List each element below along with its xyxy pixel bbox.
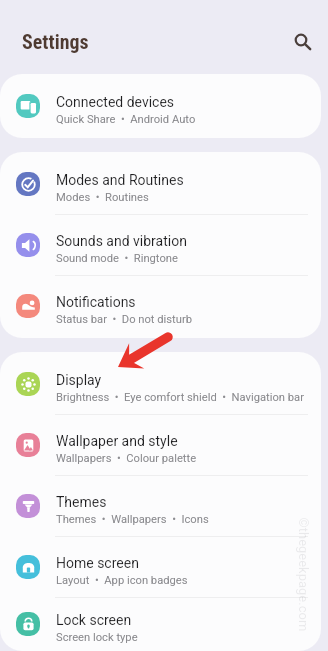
staticText: Status bar • Do not disturb: [56, 313, 192, 326]
staticText: Connected devices: [56, 94, 175, 110]
staticText: ©thegeekpage.com: [295, 517, 310, 631]
staticText: Layout • App icon badges: [56, 574, 188, 587]
button[interactable]: Notifications: [0, 276, 321, 336]
staticText: Settings: [22, 30, 89, 53]
button[interactable]: Wallpaper and style: [0, 415, 321, 475]
staticText: Quick Share • Android Auto: [56, 113, 196, 126]
staticText: Sounds and vibration: [56, 233, 187, 249]
staticText: Lock screen: [56, 612, 132, 628]
button[interactable]: Modes and Routines: [0, 154, 321, 214]
staticText: Notifications: [56, 294, 136, 310]
staticText: Brightness • Eye comfort shield • Naviga…: [56, 391, 304, 404]
button[interactable]: Search: [288, 27, 314, 53]
staticText: Modes and Routines: [56, 172, 184, 188]
staticText: Modes • Routines: [56, 191, 149, 204]
staticText: Themes: [56, 494, 107, 510]
button[interactable]: Connected devices: [0, 76, 321, 136]
staticText: Screen lock type: [56, 631, 138, 644]
button[interactable]: Lock screen: [0, 598, 321, 649]
staticText: Sound mode • Ringtone: [56, 252, 178, 265]
staticText: Wallpapers • Colour palette: [56, 452, 197, 465]
button[interactable]: Home screen: [0, 537, 321, 597]
staticText: Themes • Wallpapers • Icons: [56, 513, 209, 526]
button[interactable]: Display: [0, 354, 321, 414]
button[interactable]: Themes: [0, 476, 321, 536]
staticText: Home screen: [56, 555, 139, 571]
staticText: Display: [56, 372, 102, 388]
staticText: Wallpaper and style: [56, 433, 178, 449]
button[interactable]: Sounds and vibration: [0, 215, 321, 275]
